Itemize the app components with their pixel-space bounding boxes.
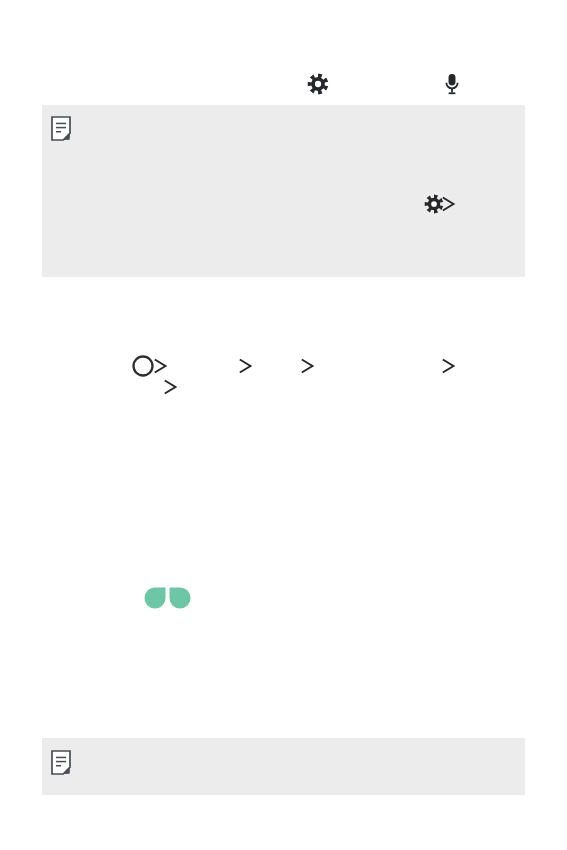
button[interactable]: Settings [310, 72, 334, 96]
button[interactable] [42, 738, 525, 795]
button[interactable] [42, 105, 525, 277]
button[interactable]: Voice input [441, 72, 465, 96]
